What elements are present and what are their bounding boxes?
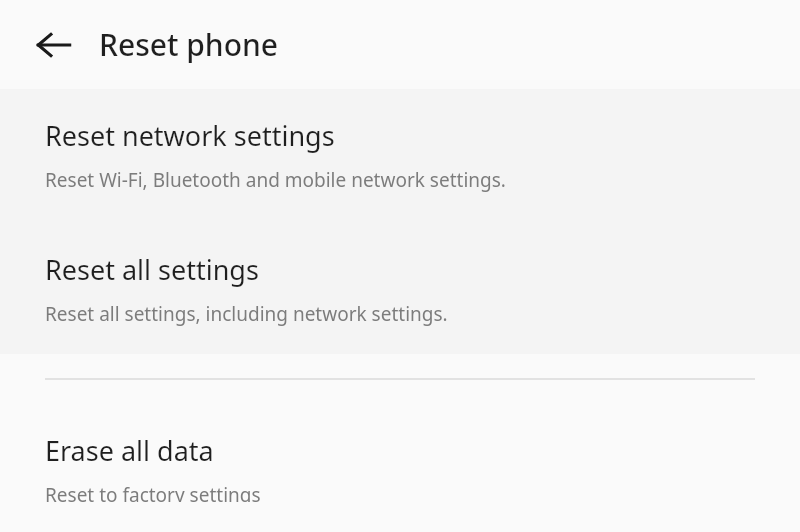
staticText: Reset network settings [45, 117, 335, 154]
staticText: Reset phone [99, 24, 279, 65]
staticText: Reset all settings, including network se… [45, 301, 448, 327]
staticText: Reset to factory settings [45, 482, 261, 502]
button[interactable]: Reset all settings [0, 223, 800, 354]
button[interactable]: Reset network settings [0, 89, 800, 223]
staticText: Reset all settings [45, 251, 259, 288]
button[interactable]: Erase all data [0, 380, 800, 532]
staticText: Reset Wi-Fi, Bluetooth and mobile networ… [45, 167, 506, 193]
staticText: Erase all data [45, 432, 214, 469]
button[interactable]: Back [28, 19, 80, 71]
